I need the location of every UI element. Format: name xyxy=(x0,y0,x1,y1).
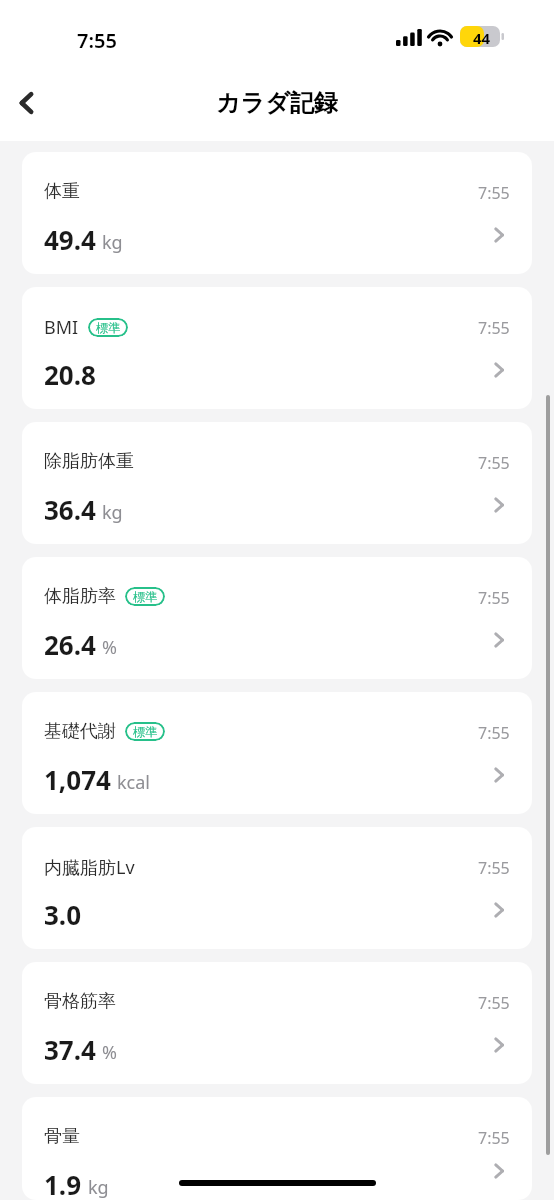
staticText: kg xyxy=(88,1175,109,1200)
button[interactable]: 基礎代謝 xyxy=(22,692,532,814)
staticText: 3.0 xyxy=(44,897,82,932)
button[interactable]: BMI xyxy=(22,287,532,409)
staticText: 7:55 xyxy=(478,587,510,609)
staticText: 26.4 xyxy=(44,627,96,662)
staticText: 7:55 xyxy=(478,1127,510,1149)
staticText: 1,074 xyxy=(44,762,111,797)
staticText: kg xyxy=(102,500,123,525)
staticText: 7:55 xyxy=(77,27,117,54)
staticText: 7:55 xyxy=(478,857,510,879)
staticText: カラダ記録 xyxy=(216,88,338,118)
button[interactable]: 体脂肪率 xyxy=(22,557,532,679)
staticText: % xyxy=(102,635,117,660)
staticText: 7:55 xyxy=(478,452,510,474)
button[interactable]: 骨格筋率 xyxy=(22,962,532,1084)
staticText: 体脂肪率 xyxy=(44,585,116,608)
staticText: 骨量 xyxy=(44,1125,80,1148)
staticText: 37.4 xyxy=(44,1032,96,1067)
staticText: 基礎代謝 xyxy=(44,720,116,743)
button[interactable]: 除脂肪体重 xyxy=(22,422,532,544)
staticText: kg xyxy=(102,230,123,255)
staticText: 7:55 xyxy=(478,182,510,204)
staticText: 骨格筋率 xyxy=(44,990,116,1013)
button[interactable]: 内臓脂肪Lv xyxy=(22,827,532,949)
button[interactable]: Back xyxy=(0,76,54,130)
staticText: 標準 xyxy=(133,589,157,604)
staticText: 49.4 xyxy=(44,222,96,257)
staticText: 内臓脂肪Lv xyxy=(44,855,135,880)
staticText: 標準 xyxy=(96,320,120,335)
staticText: 7:55 xyxy=(478,317,510,339)
staticText: 36.4 xyxy=(44,492,96,527)
staticText: 7:55 xyxy=(478,992,510,1014)
staticText: BMI xyxy=(44,315,79,340)
staticText: 20.8 xyxy=(44,357,96,392)
button[interactable]: 骨量 xyxy=(22,1097,532,1200)
button[interactable]: 体重 xyxy=(22,152,532,274)
staticText: % xyxy=(102,1040,117,1065)
staticText: 44 xyxy=(473,28,491,48)
staticText: 体重 xyxy=(44,180,80,203)
staticText: 除脂肪体重 xyxy=(44,450,134,473)
staticText: 標準 xyxy=(133,724,157,739)
staticText: 1.9 xyxy=(44,1167,82,1200)
staticText: 7:55 xyxy=(478,722,510,744)
staticText: kcal xyxy=(117,770,150,795)
